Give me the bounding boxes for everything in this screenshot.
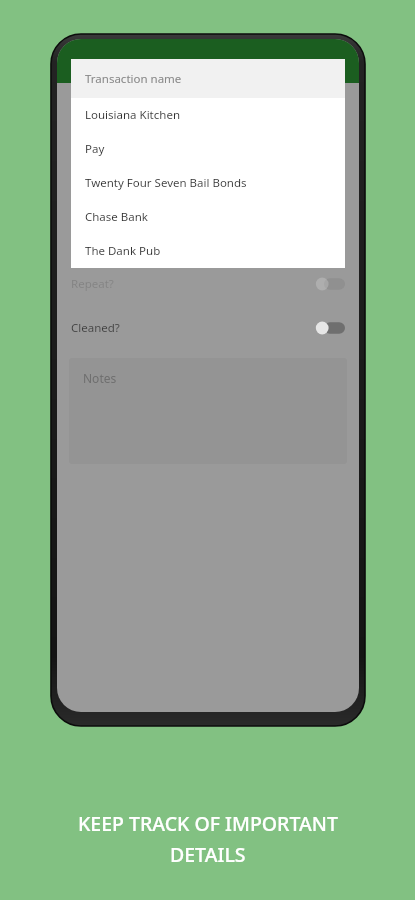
staticText: Transaction name — [85, 71, 182, 87]
button[interactable]: Twenty Four Seven Bail Bonds — [71, 166, 345, 200]
button[interactable]: Toggle — [315, 276, 345, 292]
button[interactable]: Pay — [71, 132, 345, 166]
staticText: Notes — [83, 370, 117, 386]
staticText: DETAILS — [170, 841, 246, 868]
button[interactable]: Cleaned? — [57, 312, 359, 344]
button[interactable]: Transaction name — [71, 59, 345, 98]
staticText: Pay — [85, 141, 105, 157]
button[interactable]: Repeat? — [57, 268, 359, 300]
button[interactable]: Louisiana Kitchen — [71, 98, 345, 132]
button[interactable]: Toggle — [315, 320, 345, 336]
button[interactable]: The Dank Pub — [71, 234, 345, 268]
staticText: Cleaned? — [71, 320, 120, 336]
staticText: Twenty Four Seven Bail Bonds — [85, 175, 247, 191]
staticText: The Dank Pub — [85, 243, 161, 259]
staticText: KEEP TRACK OF IMPORTANT — [78, 810, 338, 837]
staticText: Louisiana Kitchen — [85, 107, 180, 123]
staticText: Chase Bank — [85, 209, 148, 225]
staticText: Repeat? — [71, 276, 114, 292]
button[interactable]: Chase Bank — [71, 200, 345, 234]
